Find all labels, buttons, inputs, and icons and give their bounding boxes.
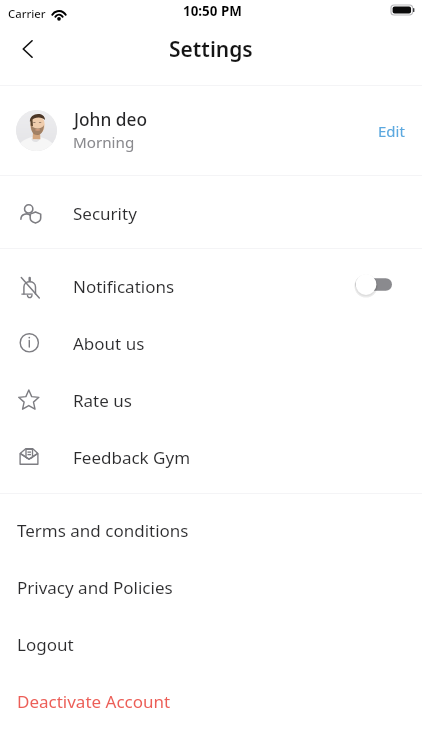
button[interactable]: Rate us <box>0 372 422 429</box>
button[interactable]: Edit <box>368 113 415 149</box>
staticText: Notifications <box>73 275 175 298</box>
staticText: Settings <box>169 35 253 64</box>
button[interactable]: Back <box>7 28 48 69</box>
staticText: Rate us <box>73 389 132 412</box>
staticText: Security <box>73 202 137 225</box>
staticText: Feedback Gym <box>73 446 191 469</box>
staticText: About us <box>73 332 145 355</box>
staticText: Terms and conditions <box>17 519 189 542</box>
staticText: Deactivate Account <box>17 690 171 713</box>
button[interactable]: Logout <box>0 616 422 673</box>
staticText: Morning <box>73 132 135 153</box>
staticText: John deo <box>74 108 147 132</box>
button[interactable]: Feedback Gym <box>0 429 422 486</box>
button[interactable]: Notifications toggle <box>353 275 393 299</box>
button[interactable]: Notifications <box>0 258 422 315</box>
button[interactable]: John deo <box>0 86 422 175</box>
staticText: Logout <box>17 633 74 656</box>
button[interactable]: Deactivate Account <box>0 673 422 730</box>
staticText: Carrier <box>8 6 46 21</box>
button[interactable]: Security <box>0 185 422 242</box>
button[interactable]: Privacy and Policies <box>0 559 422 616</box>
button[interactable]: About us <box>0 315 422 372</box>
staticText: Privacy and Policies <box>17 576 173 599</box>
staticText: 10:50 PM <box>183 2 242 20</box>
staticText: Edit <box>378 121 405 141</box>
button[interactable]: Terms and conditions <box>0 502 422 559</box>
